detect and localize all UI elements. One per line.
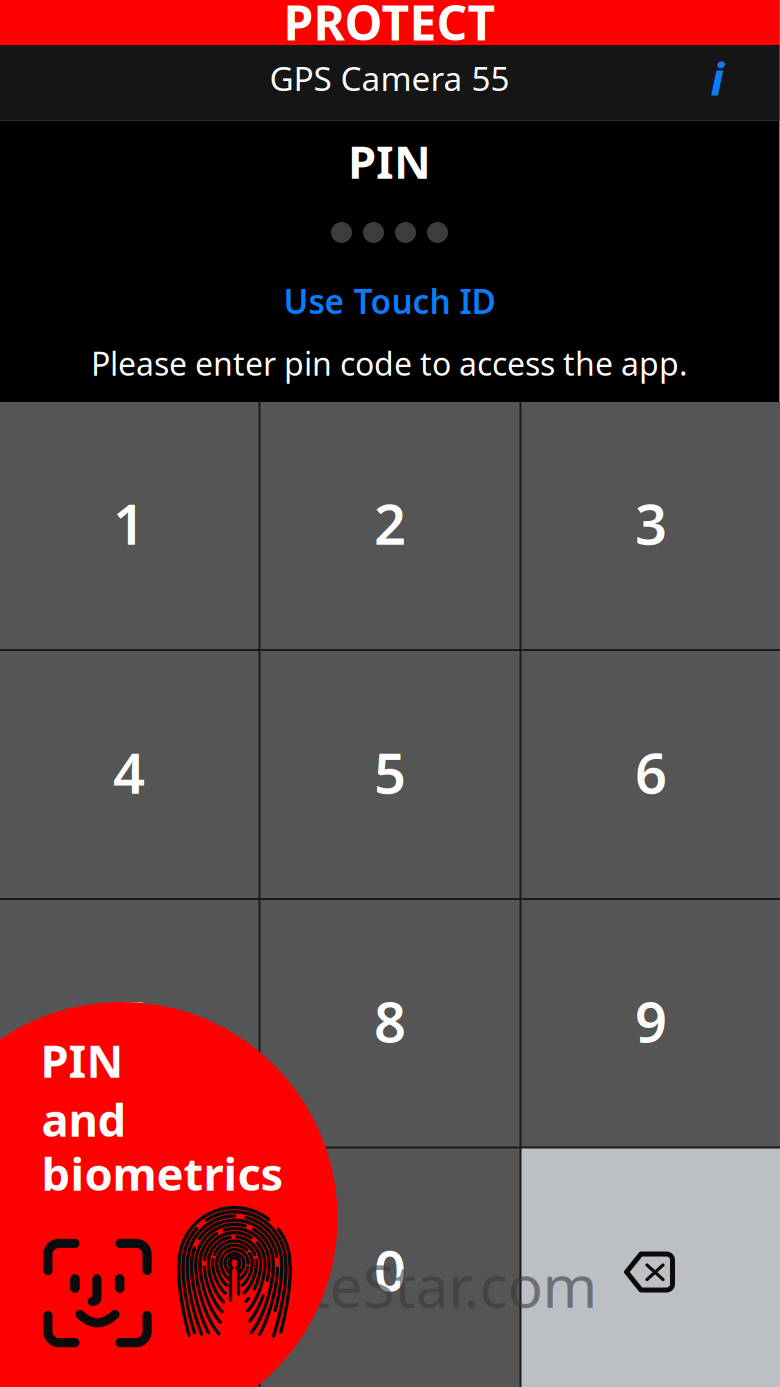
staticText: PIN bbox=[40, 1030, 123, 1090]
button[interactable]: 7 bbox=[0, 900, 258, 1146]
staticText: 5 bbox=[374, 735, 406, 809]
button[interactable]: 0 bbox=[260, 1148, 519, 1387]
staticText: 6 bbox=[635, 735, 667, 809]
button[interactable]: 9 bbox=[521, 900, 780, 1146]
staticText: ateStar.com bbox=[275, 1246, 597, 1324]
staticText: Use Touch ID bbox=[283, 279, 495, 323]
staticText: 7 bbox=[113, 984, 145, 1058]
staticText: 2 bbox=[374, 486, 406, 560]
staticText: PROTECT bbox=[283, 0, 495, 54]
button[interactable]: 8 bbox=[260, 900, 519, 1146]
button[interactable]: 1 bbox=[0, 402, 258, 649]
button[interactable]: 4 bbox=[0, 651, 258, 898]
button[interactable]: 5 bbox=[260, 651, 519, 898]
button[interactable]: 3 bbox=[521, 402, 780, 649]
staticText: 3 bbox=[635, 486, 667, 560]
button[interactable]: Information bbox=[689, 50, 745, 106]
button[interactable]: Delete bbox=[521, 1148, 780, 1387]
button[interactable]: 2 bbox=[260, 402, 519, 649]
staticText: and bbox=[41, 1089, 126, 1149]
staticText: GPS Camera 55 bbox=[269, 56, 509, 100]
staticText: 0 bbox=[374, 1232, 406, 1307]
staticText: 4 bbox=[113, 735, 145, 809]
staticText: biometrics bbox=[41, 1143, 283, 1203]
staticText: Please enter pin code to access the app. bbox=[91, 342, 688, 384]
staticText: i bbox=[710, 48, 724, 108]
staticText: PIN bbox=[348, 131, 431, 191]
staticText: 1 bbox=[113, 486, 145, 560]
button[interactable]: 6 bbox=[521, 651, 780, 898]
staticText: 8 bbox=[374, 984, 406, 1058]
staticText: 9 bbox=[635, 984, 667, 1058]
button[interactable]: Use Touch ID bbox=[0, 279, 779, 323]
